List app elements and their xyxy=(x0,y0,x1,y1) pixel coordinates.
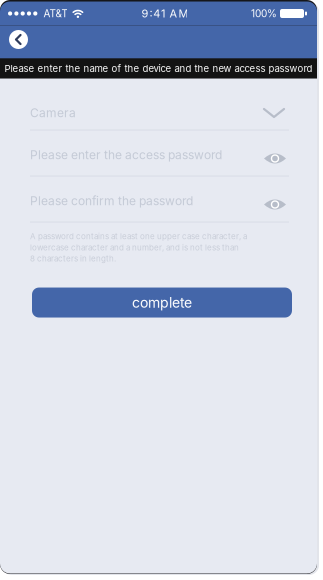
button[interactable]: Show password xyxy=(264,198,289,212)
staticText: 9:41 AM xyxy=(142,7,188,20)
staticText: Camera xyxy=(30,106,76,120)
button[interactable]: complete xyxy=(32,287,292,317)
button[interactable]: Show password xyxy=(264,152,289,166)
staticText: AT&T xyxy=(43,7,67,20)
staticText: 100% xyxy=(251,7,277,20)
staticText: 8 characters in length. xyxy=(30,254,116,264)
staticText: Please confirm the password xyxy=(30,194,193,208)
staticText: lowercase character and a number, and is… xyxy=(30,243,239,252)
button[interactable]: Back xyxy=(9,30,28,49)
staticText: A password contains at least one upper c… xyxy=(30,231,247,241)
staticText: Please enter the access password xyxy=(30,148,222,162)
button[interactable]: Camera xyxy=(0,84,317,130)
staticText: Please enter the name of the device and … xyxy=(4,63,312,74)
staticText: complete xyxy=(132,294,192,311)
